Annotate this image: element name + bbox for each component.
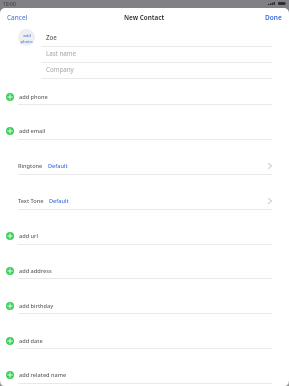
staticText: Default (48, 162, 68, 170)
staticText: add date (19, 337, 43, 345)
button[interactable]: Last name (46, 46, 273, 60)
staticText: Zoe (46, 33, 57, 41)
button[interactable]: Done (255, 9, 289, 26)
staticText: Default (49, 197, 69, 205)
button[interactable]: Company (46, 62, 273, 76)
staticText: Text Tone (18, 197, 44, 205)
staticText: New Contact (124, 13, 165, 22)
button[interactable]: add date (0, 332, 289, 350)
staticText: add related name (19, 371, 67, 379)
button[interactable]: add address (0, 262, 289, 280)
staticText: 10:00 (3, 1, 16, 8)
staticText: photo (20, 38, 33, 44)
staticText: add (23, 32, 31, 38)
button[interactable]: Ringtone (0, 157, 289, 175)
staticText: Last name (46, 49, 77, 57)
button[interactable]: add related name (0, 366, 289, 384)
staticText: Company (46, 65, 74, 73)
button[interactable]: Zoe (46, 30, 273, 44)
button[interactable]: add email (0, 122, 289, 140)
staticText: Ringtone (18, 162, 43, 170)
staticText: Cancel (7, 13, 28, 22)
button[interactable]: Text Tone (0, 192, 289, 210)
staticText: add address (19, 267, 52, 275)
button[interactable]: add phone (0, 88, 289, 106)
staticText: add email (19, 127, 46, 135)
button[interactable]: add birthday (0, 297, 289, 315)
staticText: add phone (19, 93, 48, 101)
button[interactable]: add url (0, 227, 289, 245)
staticText: add url (19, 232, 38, 240)
button[interactable]: Cancel (0, 9, 38, 26)
staticText: add birthday (19, 302, 54, 310)
staticText: Done (265, 13, 282, 22)
button[interactable]: Add photo (18, 29, 35, 46)
